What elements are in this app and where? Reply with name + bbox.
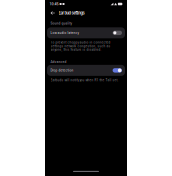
staticText: Sound quality [50, 22, 72, 25]
staticText: Earbud settings [58, 10, 84, 16]
staticText: Earbuds will notify you when R1 the Tall… [50, 78, 118, 82]
staticText: 10:45 [49, 2, 58, 6]
staticText: To prevent choppy audio in connected set… [50, 41, 110, 52]
staticText: Drop detection [50, 68, 73, 72]
staticText: Low audio latency [50, 31, 78, 35]
button[interactable]: Low audio latency [47, 27, 125, 38]
button[interactable]: Drop detection [47, 65, 125, 76]
staticText: Advanced [50, 60, 66, 64]
button[interactable]: Back [49, 9, 56, 17]
